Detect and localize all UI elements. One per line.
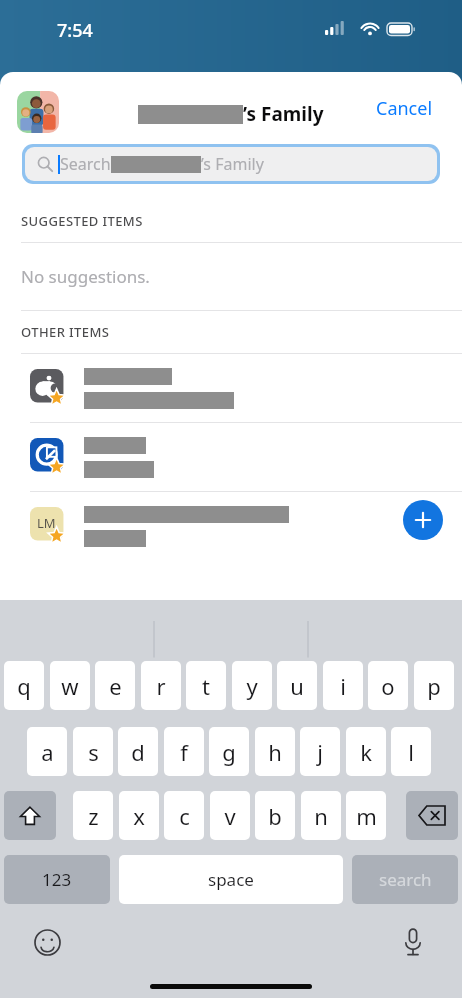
button[interactable]: l: [391, 727, 431, 776]
staticText: r: [156, 671, 166, 701]
staticText: d: [131, 737, 145, 767]
staticText: search: [379, 868, 432, 891]
staticText: u: [290, 671, 304, 701]
staticText: e: [109, 671, 122, 701]
button[interactable]: Family group icon: [17, 91, 59, 133]
staticText: a: [41, 737, 54, 767]
button[interactable]: space: [119, 855, 343, 904]
button[interactable]: Backspace: [406, 791, 458, 840]
button[interactable]: search: [352, 855, 458, 904]
button[interactable]: v: [210, 791, 250, 840]
button[interactable]: n: [301, 791, 341, 840]
staticText: k: [360, 737, 372, 767]
button[interactable]: k: [346, 727, 386, 776]
button[interactable]: Emoji keyboard: [30, 925, 64, 959]
staticText: z: [88, 801, 99, 831]
staticText: o: [381, 671, 395, 701]
staticText: Cancel: [376, 96, 433, 121]
staticText: c: [179, 801, 190, 831]
staticText: LM: [37, 514, 56, 532]
button[interactable]: a: [27, 727, 67, 776]
button[interactable]: p: [414, 661, 454, 710]
staticText: h: [268, 737, 282, 767]
button[interactable]: Dictation: [396, 925, 430, 959]
staticText: m: [356, 801, 377, 831]
button[interactable]: h: [255, 727, 295, 776]
staticText: g: [222, 737, 236, 767]
staticText: space: [208, 868, 254, 891]
button[interactable]: r: [141, 661, 181, 710]
button[interactable]: [0, 354, 462, 422]
staticText: Search: [60, 153, 111, 175]
staticText: f: [180, 737, 188, 767]
button[interactable]: Add item: [403, 500, 443, 540]
staticText: ’s Family: [243, 101, 324, 127]
staticText: j: [317, 737, 323, 767]
button[interactable]: w: [50, 661, 90, 710]
staticText: v: [224, 801, 236, 831]
staticText: OTHER ITEMS: [21, 323, 110, 341]
button[interactable]: g: [209, 727, 249, 776]
button[interactable]: LM: [0, 492, 462, 560]
button[interactable]: o: [368, 661, 408, 710]
button[interactable]: c: [164, 791, 204, 840]
button[interactable]: Cancel: [372, 88, 437, 129]
button[interactable]: f: [164, 727, 204, 776]
button[interactable]: d: [118, 727, 158, 776]
button[interactable]: z: [73, 791, 113, 840]
button[interactable]: m: [346, 791, 386, 840]
staticText: s: [88, 737, 99, 767]
staticText: b: [268, 801, 282, 831]
button[interactable]: 123: [4, 855, 110, 904]
staticText: No suggestions.: [21, 265, 150, 288]
button[interactable]: Shift: [4, 791, 56, 840]
button[interactable]: j: [300, 727, 340, 776]
staticText: ’s Family: [201, 153, 264, 175]
staticText: l: [408, 737, 414, 767]
staticText: i: [340, 671, 346, 701]
staticText: SUGGESTED ITEMS: [21, 212, 143, 230]
button[interactable]: Search: [22, 144, 440, 184]
button[interactable]: s: [73, 727, 113, 776]
button[interactable]: t: [186, 661, 226, 710]
button[interactable]: [0, 423, 462, 491]
button[interactable]: b: [255, 791, 295, 840]
staticText: p: [427, 671, 441, 701]
staticText: n: [314, 801, 328, 831]
button[interactable]: y: [232, 661, 272, 710]
staticText: q: [17, 671, 31, 701]
staticText: 123: [42, 868, 72, 891]
button[interactable]: u: [277, 661, 317, 710]
button[interactable]: q: [4, 661, 44, 710]
button[interactable]: e: [95, 661, 135, 710]
staticText: t: [202, 671, 210, 701]
button[interactable]: x: [119, 791, 159, 840]
button[interactable]: i: [323, 661, 363, 710]
staticText: w: [61, 671, 79, 701]
staticText: x: [133, 801, 145, 831]
staticText: 7:54: [57, 18, 93, 43]
staticText: y: [246, 671, 258, 701]
